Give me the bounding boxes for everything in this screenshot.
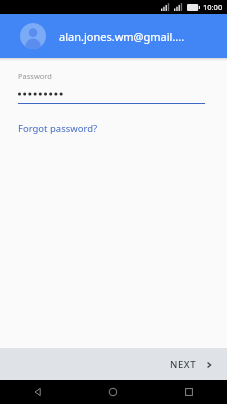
button[interactable]: NEXT <box>156 352 227 377</box>
button[interactable]: Back <box>0 380 75 404</box>
staticText: Forgot password? <box>18 122 98 135</box>
button[interactable]: Recent apps <box>151 380 227 404</box>
button[interactable]: Forgot password? <box>18 120 98 137</box>
staticText: NEXT <box>170 358 197 371</box>
button[interactable]: Home <box>75 380 151 404</box>
staticText: Password <box>18 71 52 81</box>
staticText: 10:00 <box>203 2 223 12</box>
button[interactable]: alan.jones.wm@gmail.... <box>0 14 227 58</box>
button[interactable] <box>18 88 205 100</box>
staticText: alan.jones.wm@gmail.... <box>59 29 185 44</box>
